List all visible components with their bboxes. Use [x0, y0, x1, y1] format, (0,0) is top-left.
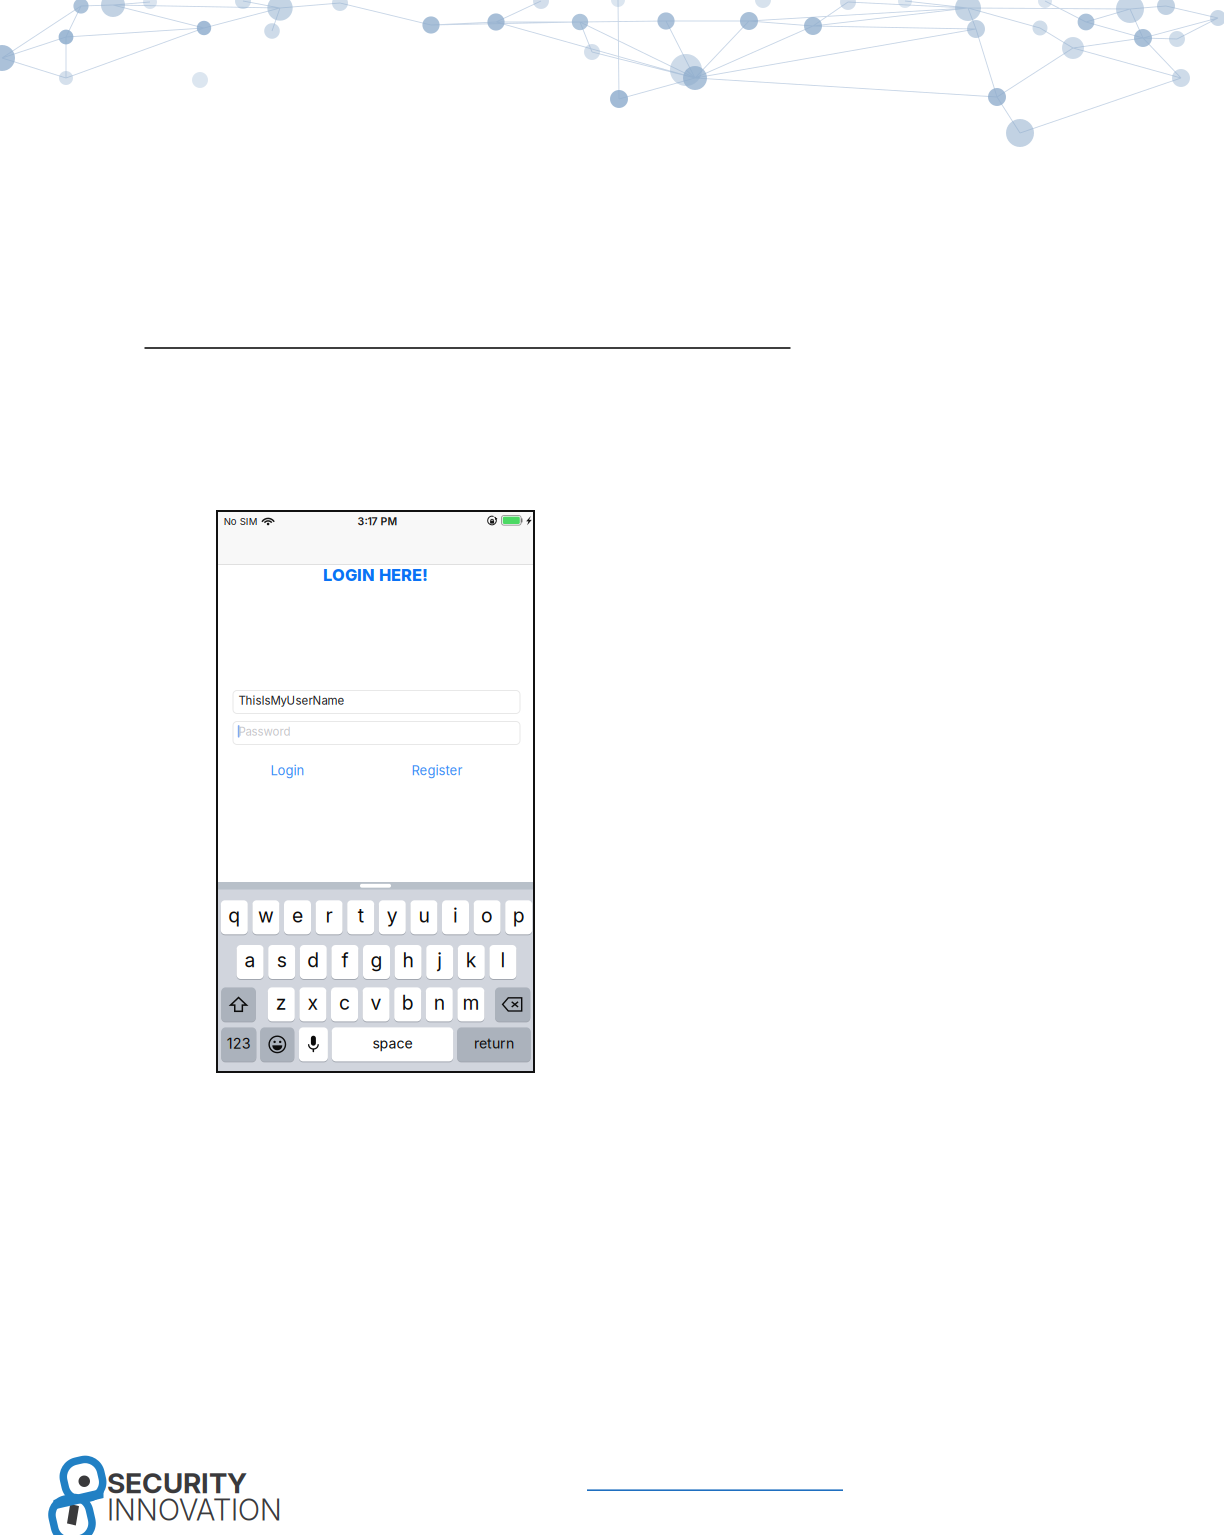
staticText: c — [339, 991, 350, 1014]
staticText: Register — [411, 763, 462, 778]
staticText: i — [453, 904, 458, 927]
button[interactable]: t — [347, 900, 374, 934]
staticText: SECURITY — [107, 1466, 247, 1500]
staticText: m — [462, 991, 479, 1014]
button[interactable]: e — [284, 900, 311, 934]
button[interactable]: 123 — [221, 1027, 256, 1061]
button[interactable]: Emoji — [260, 1027, 294, 1061]
button[interactable]: z — [268, 987, 295, 1021]
staticText: k — [466, 948, 477, 972]
button[interactable]: c — [331, 987, 358, 1021]
button[interactable]: g — [363, 945, 390, 979]
button[interactable]: Login — [242, 761, 332, 779]
staticText: Login — [270, 763, 304, 778]
staticText: r — [326, 904, 333, 927]
button[interactable]: return — [457, 1027, 531, 1061]
staticText: 123 — [227, 1035, 251, 1052]
button[interactable]: u — [410, 900, 437, 934]
staticText: return — [474, 1035, 514, 1052]
button[interactable]: o — [474, 900, 501, 934]
button[interactable]: Delete — [495, 987, 530, 1021]
button[interactable]: a — [237, 945, 264, 979]
staticText: x — [307, 991, 318, 1014]
staticText: h — [403, 948, 414, 972]
staticText: ThisIsMyUserName — [239, 694, 345, 708]
button[interactable]: Dictation — [299, 1027, 328, 1061]
staticText: v — [371, 991, 382, 1014]
button[interactable]: d — [300, 945, 327, 979]
staticText: LOGIN HERE! — [323, 565, 428, 585]
button[interactable]: LOGIN HERE! — [295, 566, 455, 584]
staticText: l — [500, 948, 505, 972]
staticText: q — [228, 904, 240, 927]
staticText: w — [258, 904, 274, 927]
button[interactable]: v — [363, 987, 390, 1021]
staticText: g — [370, 948, 382, 972]
staticText: space — [372, 1035, 412, 1052]
button[interactable]: m — [457, 987, 484, 1021]
button[interactable]: f — [331, 945, 358, 979]
button[interactable]: Register — [392, 761, 482, 779]
button[interactable]: s — [268, 945, 295, 979]
staticText: e — [292, 904, 303, 927]
staticText: y — [387, 904, 398, 927]
button[interactable]: b — [394, 987, 421, 1021]
button[interactable]: Password — [233, 721, 520, 744]
button[interactable]: y — [379, 900, 406, 934]
button[interactable]: Shift — [221, 987, 256, 1021]
button[interactable]: p — [505, 900, 532, 934]
staticText: s — [277, 948, 287, 972]
button[interactable]: n — [426, 987, 453, 1021]
staticText: n — [434, 991, 445, 1014]
staticText: u — [418, 904, 429, 927]
staticText: a — [245, 948, 256, 972]
staticText: 3:17 PM — [357, 515, 397, 528]
button[interactable]: w — [252, 900, 279, 934]
button[interactable]: i — [442, 900, 469, 934]
button[interactable]: r — [316, 900, 343, 934]
staticText: t — [358, 904, 364, 927]
staticText: f — [341, 948, 348, 972]
button[interactable]: space — [332, 1027, 453, 1061]
staticText: No SIM — [224, 516, 258, 527]
button[interactable]: Security Innovation website — [587, 1471, 843, 1491]
button[interactable]: j — [426, 945, 453, 979]
button[interactable]: ThisIsMyUserName — [233, 690, 520, 713]
staticText: z — [276, 991, 287, 1014]
staticText: j — [437, 948, 442, 972]
button[interactable]: q — [221, 900, 248, 934]
button[interactable]: l — [489, 945, 516, 979]
staticText: d — [307, 948, 319, 972]
button[interactable]: k — [458, 945, 485, 979]
staticText: p — [513, 904, 525, 927]
button[interactable]: x — [299, 987, 326, 1021]
staticText: b — [402, 991, 414, 1014]
staticText: Password — [239, 725, 291, 739]
staticText: o — [481, 904, 493, 927]
button[interactable]: h — [395, 945, 422, 979]
staticText: INNOVATION — [107, 1492, 282, 1527]
